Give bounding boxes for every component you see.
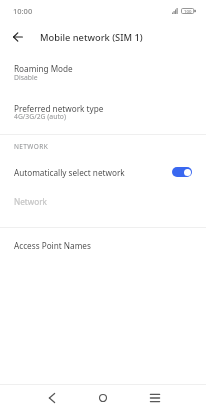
staticText: 100 [184,8,192,14]
staticText: Roaming Mode [14,63,73,74]
staticText: Preferred network type [14,103,104,114]
staticText: Network [14,196,47,207]
button[interactable]: Back [36,384,68,412]
staticText: Mobile network (SIM 1) [40,31,143,44]
button[interactable]: Preferred network type [0,96,206,134]
staticText: 10:00 [13,6,33,16]
button[interactable]: Roaming Mode [0,56,206,95]
button[interactable]: Automatically select network [0,157,206,187]
button[interactable]: Back [6,25,30,49]
staticText: NETWORK [14,142,49,151]
staticText: Automatically select network [14,167,125,178]
button[interactable]: Access Point Names [0,228,206,260]
staticText: 4G/3G/2G (auto) [14,112,66,121]
staticText: Access Point Names [14,240,91,251]
button[interactable]: Home [87,384,119,412]
staticText: Disable [14,73,38,82]
button[interactable]: Recents [139,384,171,412]
